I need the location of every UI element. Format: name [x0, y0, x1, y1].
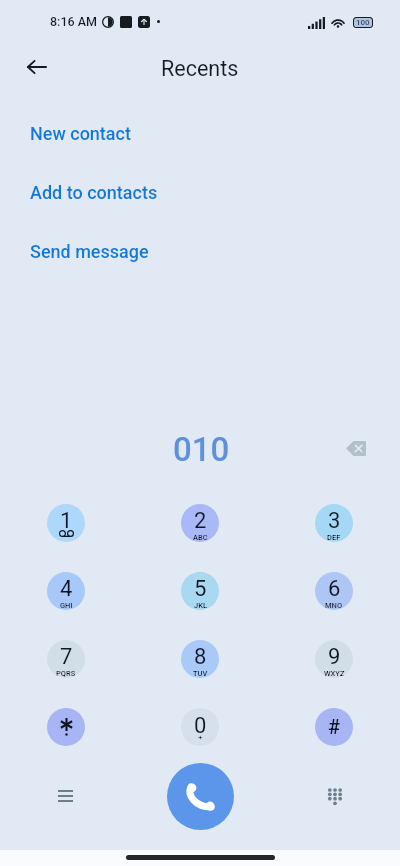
- staticText: +: [198, 733, 203, 742]
- button[interactable]: Backspace: [336, 428, 376, 468]
- staticText: 7: [60, 644, 73, 670]
- staticText: #: [328, 715, 341, 738]
- button[interactable]: Send message: [0, 231, 400, 271]
- button[interactable]: 0: [181, 708, 219, 746]
- button[interactable]: #: [315, 708, 353, 746]
- staticText: New contact: [30, 123, 131, 144]
- staticText: Send message: [30, 241, 149, 262]
- staticText: TUV: [193, 669, 208, 678]
- staticText: 8:16 AM: [50, 14, 97, 29]
- button[interactable]: Call log: [45, 776, 85, 816]
- staticText: MNO: [325, 601, 343, 610]
- staticText: 3: [328, 508, 341, 534]
- staticText: Add to contacts: [30, 182, 158, 203]
- button[interactable]: Dialpad: [315, 776, 355, 816]
- staticText: 2: [194, 508, 207, 534]
- button[interactable]: 8: [181, 640, 219, 678]
- button[interactable]: 7: [47, 640, 85, 678]
- staticText: JKL: [194, 601, 207, 610]
- staticText: PQRS: [56, 669, 76, 678]
- staticText: GHI: [60, 601, 73, 610]
- button[interactable]: 3: [315, 504, 353, 542]
- staticText: DEF: [327, 533, 341, 542]
- button[interactable]: Call: [167, 763, 234, 830]
- staticText: 0: [194, 713, 207, 739]
- button[interactable]: 2: [181, 504, 219, 542]
- button[interactable]: 1: [47, 504, 85, 542]
- staticText: 100: [356, 18, 370, 27]
- button[interactable]: 4: [47, 572, 85, 610]
- staticText: 5: [194, 576, 207, 602]
- button[interactable]: 9: [315, 640, 353, 678]
- button[interactable]: New contact: [0, 113, 400, 153]
- staticText: 010: [173, 430, 230, 469]
- staticText: 8: [194, 644, 207, 670]
- staticText: 1: [60, 508, 73, 534]
- button[interactable]: Back: [17, 47, 57, 87]
- staticText: Recents: [161, 56, 239, 81]
- staticText: 9: [328, 644, 341, 670]
- staticText: WXYZ: [324, 669, 345, 678]
- staticText: 4: [60, 576, 73, 602]
- button[interactable]: 6: [315, 572, 353, 610]
- staticText: 6: [328, 576, 341, 602]
- staticText: ABC: [193, 533, 208, 542]
- button[interactable]: [47, 708, 85, 746]
- button[interactable]: 5: [181, 572, 219, 610]
- button[interactable]: Add to contacts: [0, 172, 400, 212]
